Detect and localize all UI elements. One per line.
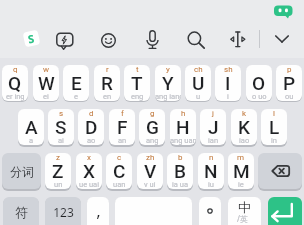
staticText: A <box>25 116 38 138</box>
staticText: ue uai <box>79 180 100 189</box>
staticText: X <box>83 160 96 182</box>
button[interactable]: E <box>63 65 89 101</box>
button[interactable] <box>199 197 221 225</box>
staticText: un <box>54 180 63 189</box>
button[interactable]: 符 <box>3 197 39 225</box>
button[interactable]: d <box>78 109 104 145</box>
staticText: ou <box>285 92 294 101</box>
staticText: an <box>118 136 127 145</box>
staticText: b <box>178 153 183 162</box>
button[interactable]: w <box>33 65 59 101</box>
staticText: S <box>55 116 67 138</box>
staticText: ai <box>58 136 64 145</box>
staticText: ao <box>87 136 96 145</box>
button[interactable]: A <box>18 109 44 145</box>
staticText: q <box>13 65 18 74</box>
button[interactable] <box>274 5 293 19</box>
button[interactable]: ch <box>185 65 211 101</box>
button[interactable] <box>145 30 160 50</box>
staticText: Z <box>52 160 64 182</box>
button[interactable]: b <box>167 153 193 189</box>
staticText: R <box>101 72 113 94</box>
staticText: L <box>269 116 280 138</box>
staticText: eng <box>131 92 144 101</box>
staticText: z <box>56 153 60 162</box>
staticText: in <box>271 136 277 145</box>
staticText: M <box>233 160 250 182</box>
button[interactable]: n <box>198 153 224 189</box>
staticText: a <box>29 136 34 145</box>
staticText: S <box>26 30 37 47</box>
button[interactable]: sh <box>215 65 241 101</box>
button[interactable]: z <box>45 153 71 189</box>
staticText: ang <box>146 136 159 145</box>
staticText: O <box>252 72 266 94</box>
staticText: ch <box>194 65 203 74</box>
staticText: s <box>59 109 64 118</box>
button[interactable]: j <box>200 109 226 145</box>
staticText: P <box>283 72 296 94</box>
button[interactable] <box>56 32 74 51</box>
staticText: e <box>74 92 78 101</box>
staticText: 123 <box>53 204 74 220</box>
button[interactable]: y <box>155 65 181 101</box>
staticText: C <box>113 160 126 182</box>
staticText: Y <box>162 72 174 94</box>
staticText: ang uang <box>170 136 196 145</box>
button[interactable]: s <box>48 109 74 145</box>
button[interactable]: O <box>246 65 272 101</box>
button[interactable]: , <box>87 197 109 225</box>
staticText: /英 <box>237 213 248 224</box>
button[interactable]: x <box>76 153 102 189</box>
staticText: G <box>146 116 159 138</box>
staticText: E <box>71 72 82 94</box>
staticText: d <box>89 109 94 118</box>
button[interactable]: 123 <box>45 197 81 225</box>
staticText: H <box>176 116 190 138</box>
button[interactable] <box>230 31 246 48</box>
button[interactable]: l <box>261 109 287 145</box>
staticText: F <box>117 116 128 138</box>
staticText: p <box>287 65 292 74</box>
button[interactable]: 分词 <box>2 153 41 189</box>
button[interactable] <box>268 197 302 225</box>
staticText: i <box>227 92 229 101</box>
button[interactable]: S <box>23 30 40 47</box>
staticText: x <box>87 153 91 162</box>
staticText: g <box>150 109 155 118</box>
staticText: K <box>238 116 250 138</box>
staticText: 中 <box>238 199 251 215</box>
staticText: uan <box>113 180 126 189</box>
button[interactable]: r <box>94 65 120 101</box>
staticText: zh <box>146 153 155 162</box>
button[interactable] <box>101 33 116 48</box>
button[interactable]: m <box>228 153 254 189</box>
button[interactable]: c <box>106 153 132 189</box>
staticText: u <box>196 92 201 101</box>
button[interactable] <box>274 32 290 46</box>
button[interactable]: zh <box>137 153 163 189</box>
staticText: en <box>103 92 112 101</box>
staticText: D <box>85 116 98 138</box>
staticText: k <box>242 109 247 118</box>
staticText: 符 <box>15 204 28 220</box>
button[interactable]: 中 <box>228 197 261 225</box>
button[interactable]: g <box>139 109 165 145</box>
button[interactable]: h <box>170 109 196 145</box>
staticText: w <box>43 65 50 74</box>
staticText: J <box>208 116 219 138</box>
staticText: ia ua <box>172 180 188 189</box>
staticText: ei <box>43 92 49 101</box>
button[interactable]: p <box>276 65 302 101</box>
staticText: Q <box>8 72 22 94</box>
staticText: ian <box>208 136 219 145</box>
button[interactable]: t <box>124 65 150 101</box>
staticText: c <box>117 153 122 162</box>
button[interactable]: q <box>2 65 28 101</box>
button[interactable] <box>187 31 206 50</box>
button[interactable]: k <box>231 109 257 145</box>
button[interactable]: f <box>109 109 135 145</box>
button[interactable] <box>258 153 302 189</box>
staticText: l <box>273 109 275 118</box>
